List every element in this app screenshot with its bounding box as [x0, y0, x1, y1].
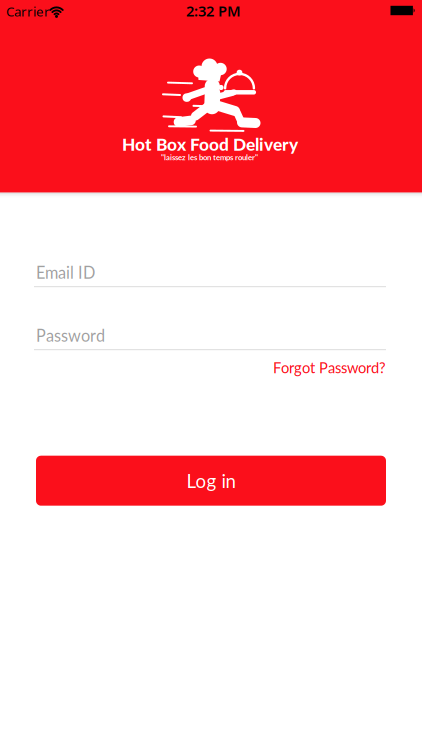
staticText: Log in [186, 469, 235, 492]
button[interactable]: Email ID [36, 252, 386, 292]
staticText: Password [36, 326, 105, 345]
staticText: 2:32 PM [186, 1, 241, 20]
button[interactable]: Password [36, 315, 386, 355]
button[interactable]: Log in [36, 456, 386, 506]
button[interactable]: Forgot Password? [36, 355, 386, 379]
staticText: Email ID [36, 263, 95, 282]
staticText: "laissez les bon temps rouler" [161, 153, 258, 162]
staticText: Hot Box Food Delivery [122, 134, 298, 154]
staticText: Carrier [6, 2, 50, 20]
staticText: Forgot Password? [273, 359, 386, 376]
